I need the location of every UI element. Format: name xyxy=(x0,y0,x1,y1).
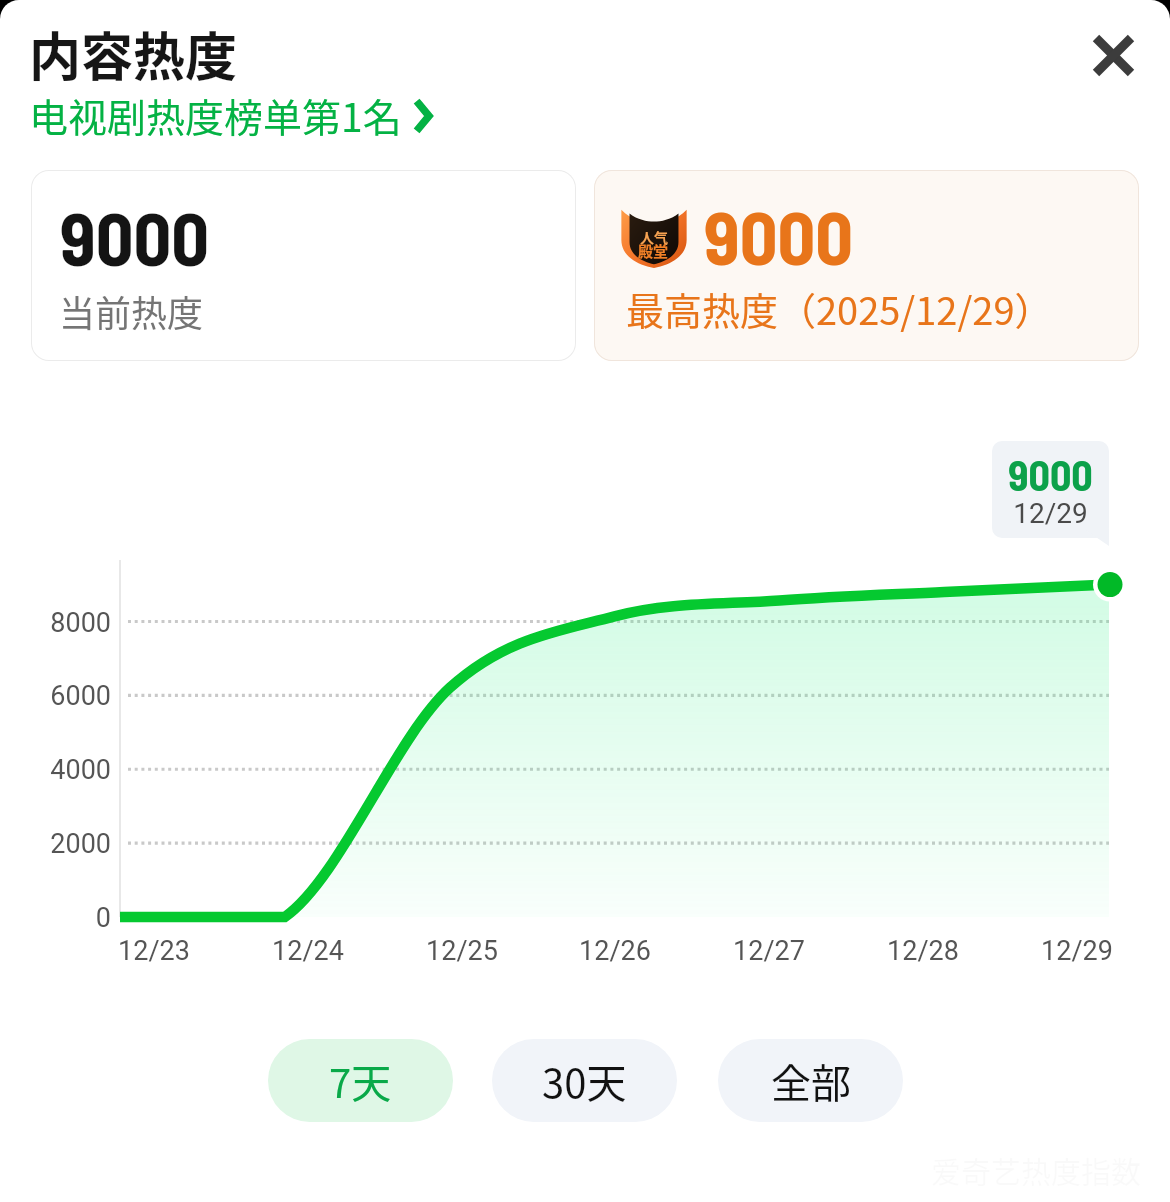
button[interactable]: Close xyxy=(1072,14,1154,96)
staticText: 12/29 xyxy=(1007,935,1147,967)
staticText: 6000 xyxy=(0,680,111,712)
staticText: 12/24 xyxy=(238,935,378,967)
staticText: 内容热度 xyxy=(29,16,238,91)
staticText: 12/29 xyxy=(992,497,1109,530)
staticText: 12/25 xyxy=(392,935,532,967)
staticText: 7天 xyxy=(329,1052,392,1110)
staticText: 0 xyxy=(0,902,111,934)
staticText: 8000 xyxy=(0,607,111,639)
button[interactable]: 7天 xyxy=(268,1039,453,1122)
staticText: 12/27 xyxy=(699,935,839,967)
button[interactable]: 人气 xyxy=(594,170,1139,361)
staticText: 当前热度 xyxy=(59,285,204,337)
staticText: 12/26 xyxy=(545,935,685,967)
button[interactable]: 9000 xyxy=(31,170,576,361)
staticText: 全部 xyxy=(771,1052,851,1110)
staticText: 30天 xyxy=(542,1052,627,1110)
staticText: 殿堂 xyxy=(638,240,669,262)
staticText: 12/23 xyxy=(84,935,224,967)
staticText: 最高热度（2025/12/29） xyxy=(626,281,1053,336)
button[interactable]: 30天 xyxy=(492,1039,677,1122)
staticText: 9000 xyxy=(704,191,854,280)
staticText: 9000 xyxy=(992,449,1109,499)
staticText: 12/28 xyxy=(853,935,993,967)
staticText: 人气 xyxy=(640,227,668,247)
staticText: 电视剧热度榜单第1名 xyxy=(29,87,402,143)
button[interactable]: 全部 xyxy=(718,1039,903,1122)
staticText: 2000 xyxy=(0,828,111,860)
staticText: 9000 xyxy=(60,192,210,281)
staticText: 4000 xyxy=(0,754,111,786)
button[interactable]: 电视剧热度榜单第1名 xyxy=(29,87,436,143)
